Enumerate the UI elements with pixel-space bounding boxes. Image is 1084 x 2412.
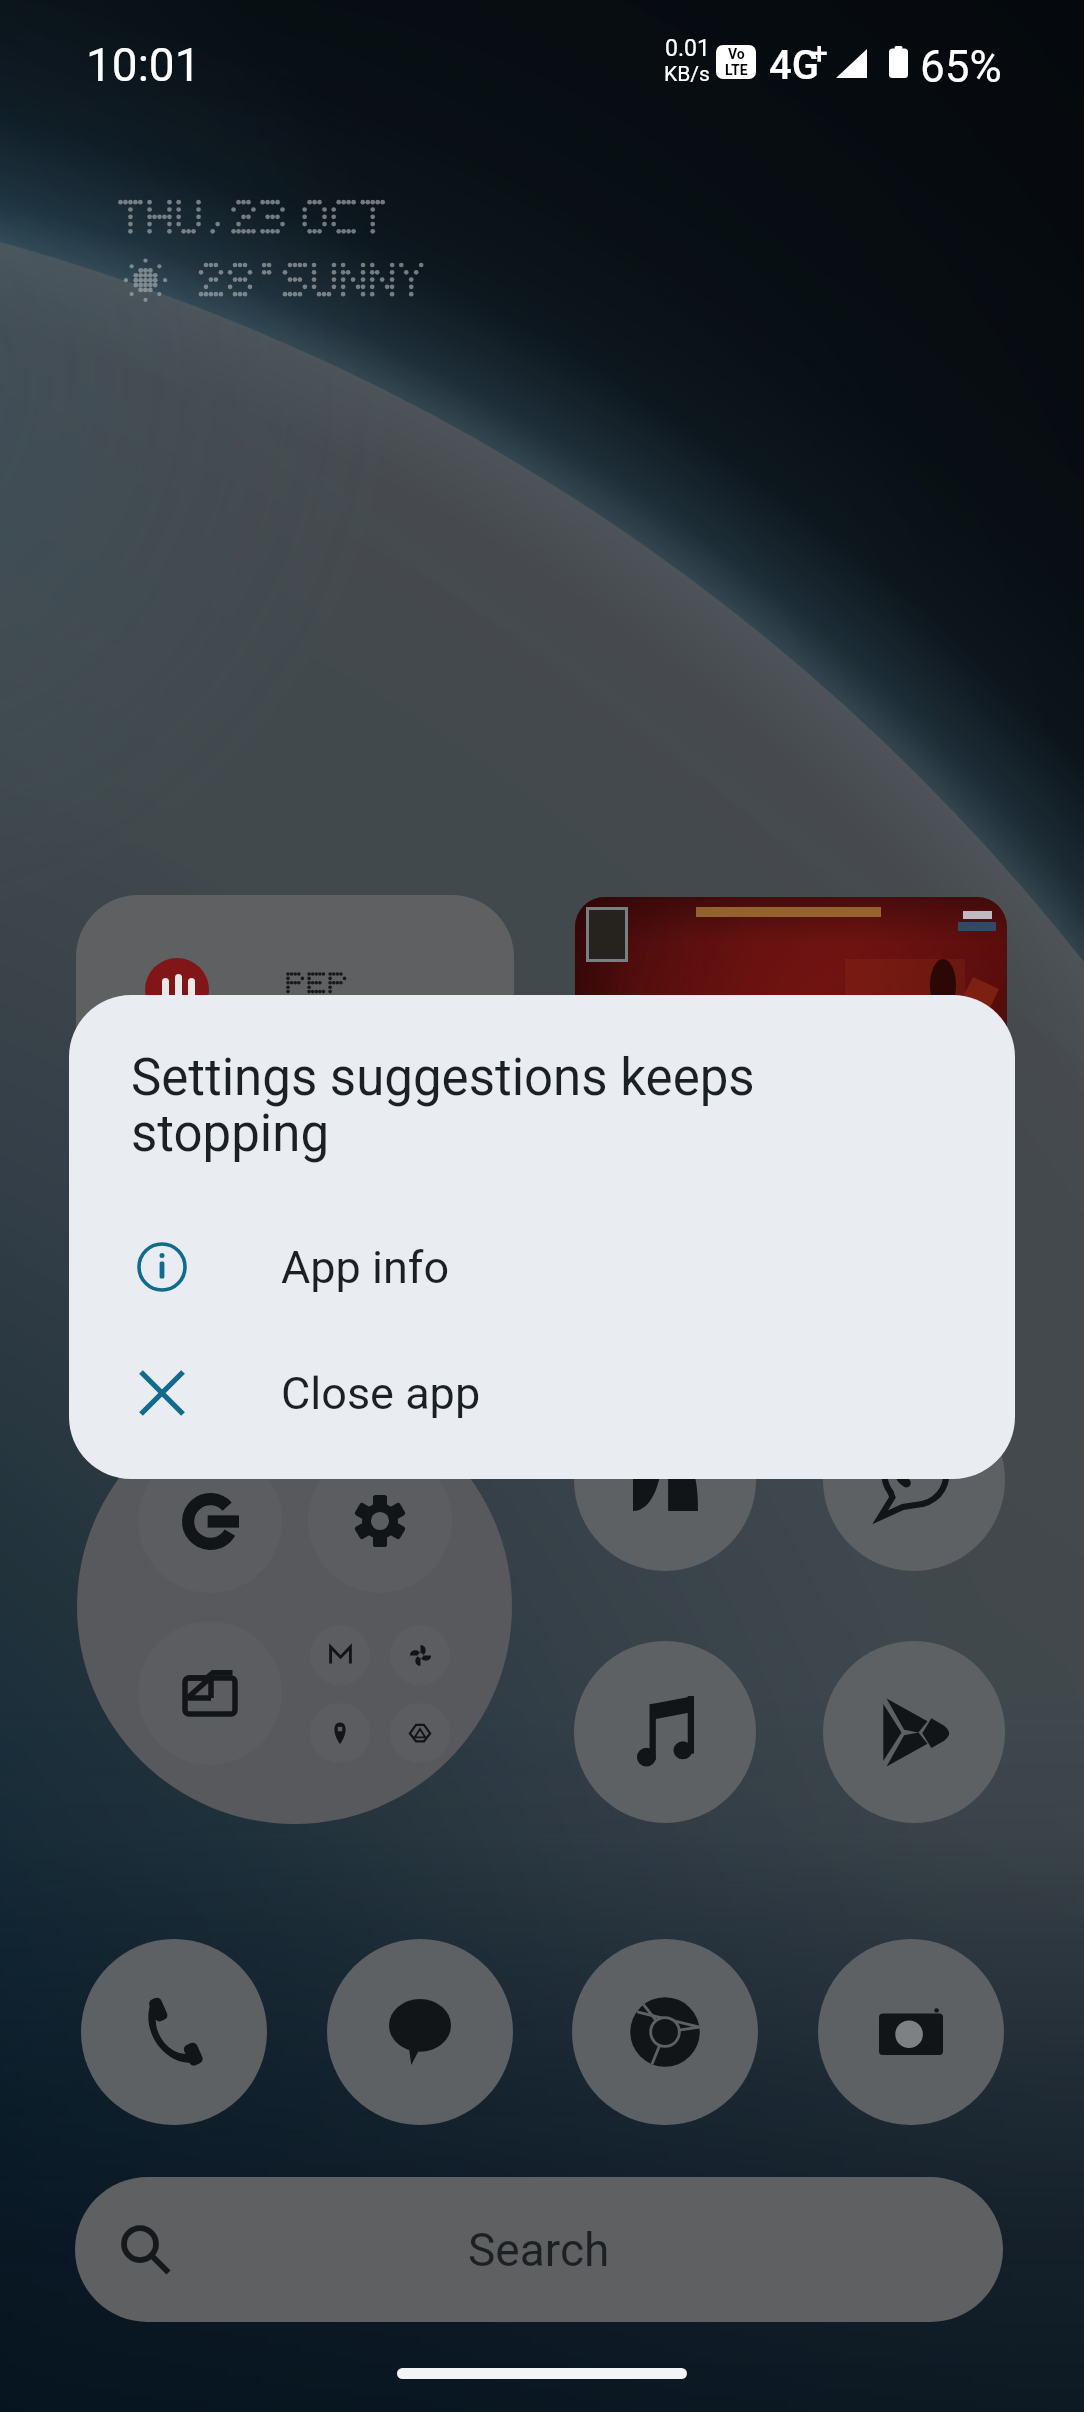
- button[interactable]: Photos: [390, 1625, 450, 1685]
- button[interactable]: App info: [69, 1221, 1015, 1313]
- staticText: 4G: [769, 42, 819, 89]
- button[interactable]: Drive: [390, 1703, 450, 1763]
- button[interactable]: Google: [138, 1449, 282, 1593]
- button[interactable]: Music: [574, 1641, 756, 1823]
- staticText: App info: [281, 1241, 450, 1294]
- staticText: 0.01: [665, 35, 710, 62]
- staticText: 65%: [920, 41, 1002, 93]
- button[interactable]: App folder: [77, 1389, 512, 1824]
- button[interactable]: Mi Video: [574, 1389, 756, 1571]
- button[interactable]: Close app: [69, 1347, 1015, 1439]
- staticText: Settings suggestions keeps stopping: [131, 1048, 957, 1164]
- staticText: LTE: [725, 62, 748, 78]
- staticText: +: [811, 35, 828, 70]
- button[interactable]: Gallery: [138, 1621, 282, 1765]
- button[interactable]: Messages: [327, 1939, 513, 2125]
- button[interactable]: Search: [75, 2177, 1003, 2322]
- button[interactable]: Gmail: [310, 1625, 370, 1685]
- button[interactable]: Phone: [81, 1939, 267, 2125]
- staticText: 10:01: [86, 38, 201, 92]
- button[interactable]: Play Store: [823, 1641, 1005, 1823]
- staticText: KB/s: [664, 62, 710, 87]
- staticText: Vo: [728, 46, 745, 62]
- button[interactable]: Maps: [310, 1703, 370, 1763]
- staticText: Close app: [281, 1367, 481, 1420]
- button[interactable]: Settings: [308, 1449, 452, 1593]
- button[interactable]: Camera: [818, 1939, 1004, 2125]
- staticText: Search: [468, 2223, 610, 2277]
- button[interactable]: WhatsApp: [823, 1389, 1005, 1571]
- button[interactable]: Chrome: [572, 1939, 758, 2125]
